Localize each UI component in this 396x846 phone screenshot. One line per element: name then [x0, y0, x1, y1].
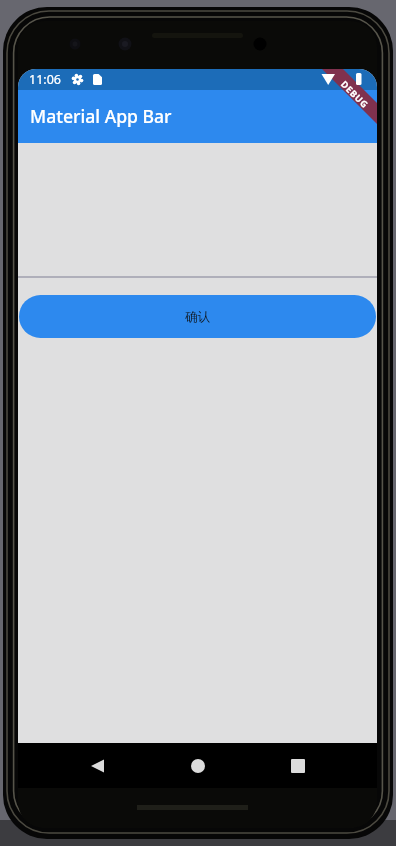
button[interactable]: Back	[75, 744, 119, 788]
button[interactable]: 确认	[19, 295, 376, 338]
staticText: DEBUG	[339, 78, 371, 110]
button[interactable]: Recents	[276, 744, 320, 788]
staticText: 确认	[185, 309, 210, 325]
button[interactable]: Home	[176, 744, 220, 788]
staticText: 11:06	[29, 71, 61, 88]
staticText: Material App Bar	[30, 104, 172, 128]
